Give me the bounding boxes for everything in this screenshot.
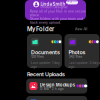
staticText: My Folder [27, 26, 54, 33]
staticText: Photos [68, 49, 85, 56]
button[interactable]: Documents [27, 34, 62, 68]
staticText: Documents [31, 49, 60, 56]
staticText: Keep all of your files in one secure pla… [30, 10, 86, 24]
staticText: Linda Smith [40, 2, 65, 7]
staticText: View All [74, 27, 87, 31]
staticText: Recent Uploads [27, 71, 65, 77]
staticText: Last update: 3 days ago [68, 61, 100, 69]
button[interactable]: View All [74, 27, 87, 31]
staticText: 12 MB · 2 h ago [40, 87, 64, 91]
button[interactable]: Design Mockups [26, 78, 87, 93]
button[interactable]: Brand Assets [26, 96, 87, 100]
staticText: Last update: 1 day ago [31, 61, 60, 69]
button[interactable]: Photos [64, 34, 99, 68]
staticText: Product Designer [40, 5, 67, 9]
staticText: Design Mockups [40, 82, 75, 88]
staticText: Upgrade [66, 0, 78, 6]
button[interactable]: Upgrade [66, 0, 78, 4]
staticText: 342 files [68, 54, 82, 59]
staticText: 128 files [31, 54, 44, 59]
